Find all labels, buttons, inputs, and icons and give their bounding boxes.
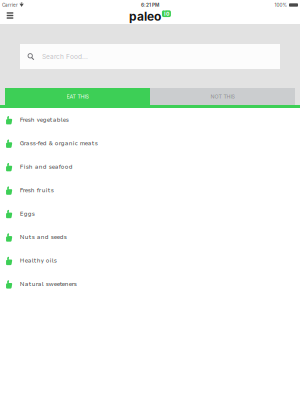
staticText: Eggs xyxy=(20,210,35,218)
button[interactable]: NOT THIS xyxy=(150,88,295,105)
staticText: Nuts and seeds xyxy=(20,233,67,241)
button[interactable]: Natural sweeteners xyxy=(0,272,300,296)
staticText: Grass-fed & organic meats xyxy=(20,140,98,147)
button[interactable]: Grass-fed & organic meats xyxy=(0,132,300,155)
button[interactable]: Healthy oils xyxy=(0,249,300,272)
staticText: Natural sweeteners xyxy=(20,280,77,288)
staticText: paleo xyxy=(129,9,161,24)
staticText: Fresh fruits xyxy=(20,187,54,194)
button[interactable]: Nuts and seeds xyxy=(0,226,300,249)
staticText: 100% xyxy=(274,2,287,8)
button[interactable]: Fresh vegetables xyxy=(0,108,300,132)
staticText: NOT THIS xyxy=(210,93,234,100)
staticText: Search Food... xyxy=(42,52,88,60)
button[interactable]: Fresh fruits xyxy=(0,179,300,202)
staticText: Fish and seafood xyxy=(20,163,73,171)
button[interactable]: Menu xyxy=(0,10,20,24)
button[interactable]: Eggs xyxy=(0,202,300,225)
staticText: io xyxy=(164,10,169,17)
staticText: 6:21 PM xyxy=(141,2,159,8)
staticText: Healthy oils xyxy=(20,257,57,264)
button[interactable]: Fish and seafood xyxy=(0,155,300,179)
staticText: Carrier xyxy=(2,2,18,8)
staticText: EAT THIS xyxy=(66,93,88,100)
staticText: Fresh vegetables xyxy=(20,116,69,124)
button[interactable]: EAT THIS xyxy=(5,88,150,105)
